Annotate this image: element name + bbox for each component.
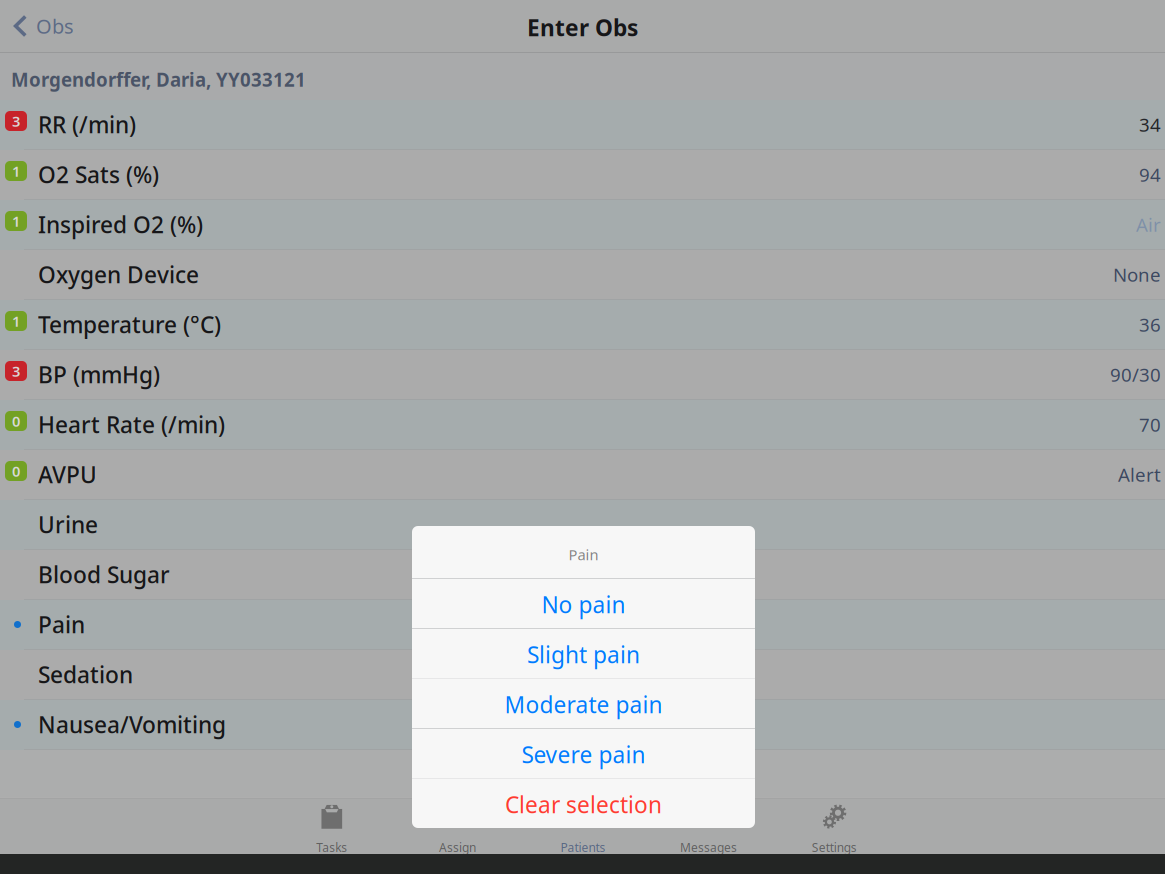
button[interactable]: Severe pain [412, 728, 755, 778]
staticText: Urine [38, 509, 98, 539]
button[interactable]: Urine [0, 500, 1165, 550]
staticText: Alert [1118, 462, 1161, 487]
staticText: 1 [12, 211, 20, 231]
staticText: 0 [12, 411, 20, 431]
button[interactable]: 0 [0, 450, 1165, 500]
staticText: Moderate pain [504, 689, 662, 719]
staticText: Inspired O2 (%) [38, 209, 203, 239]
button[interactable]: Sedation [0, 650, 1165, 700]
button[interactable]: 1 [0, 150, 1165, 200]
staticText: Obs [36, 13, 74, 39]
button[interactable]: 3 [0, 100, 1165, 150]
button[interactable]: Moderate pain [412, 678, 755, 728]
staticText: Clear selection [505, 789, 662, 819]
button[interactable]: Assign [395, 798, 520, 854]
button[interactable]: 1 [0, 300, 1165, 350]
staticText: 1 [12, 161, 20, 181]
button[interactable]: 3 [0, 350, 1165, 400]
staticText: Enter Obs [527, 12, 638, 42]
staticText: Patients [560, 839, 605, 855]
staticText: 0 [12, 461, 20, 481]
button[interactable]: Messages [646, 798, 771, 854]
staticText: Heart Rate (/min) [38, 409, 225, 439]
staticText: Slight pain [527, 639, 640, 669]
staticText: 1 [12, 311, 20, 331]
staticText: BP (mmHg) [38, 359, 160, 389]
staticText: AVPU [38, 459, 97, 489]
button[interactable]: Oxygen Device [0, 250, 1165, 300]
staticText: O2 Sats (%) [38, 159, 159, 189]
staticText: RR (/min) [38, 109, 136, 139]
staticText: 3 [12, 361, 20, 381]
button[interactable]: 0 [0, 400, 1165, 450]
button[interactable]: Patients [520, 798, 646, 854]
staticText: 3 [12, 111, 20, 131]
staticText: Nausea/Vomiting [38, 709, 226, 739]
staticText: Pain [568, 545, 598, 564]
button[interactable]: 1 [0, 200, 1165, 250]
staticText: Pain [38, 609, 85, 639]
button[interactable]: Slight pain [412, 628, 755, 678]
staticText: Messages [680, 839, 737, 855]
staticText: No pain [541, 589, 625, 619]
staticText: Tasks [316, 839, 347, 855]
button[interactable]: Blood Sugar [0, 550, 1165, 600]
button[interactable]: No pain [412, 578, 755, 628]
button[interactable]: Settings [771, 798, 897, 854]
staticText: Oxygen Device [38, 259, 199, 289]
staticText: 34 [1139, 112, 1161, 137]
staticText: 70 [1139, 412, 1161, 437]
staticText: Air [1136, 212, 1161, 237]
button[interactable]: Nausea/Vomiting [0, 700, 1165, 750]
staticText: Severe pain [521, 739, 645, 769]
staticText: Settings [812, 839, 857, 855]
staticText: Sedation [38, 659, 133, 689]
staticText: 94 [1139, 162, 1161, 187]
button[interactable]: Tasks [269, 798, 395, 854]
button[interactable]: Obs [0, 0, 84, 52]
staticText: Temperature (°C) [38, 309, 221, 339]
button[interactable]: Pain [0, 600, 1165, 650]
staticText: 90/30 [1110, 362, 1161, 387]
staticText: Blood Sugar [38, 559, 170, 589]
button[interactable]: Clear selection [412, 778, 755, 828]
staticText: None [1113, 262, 1161, 287]
staticText: 36 [1139, 312, 1161, 337]
staticText: Morgendorffer, Daria, YY033121 [11, 67, 306, 92]
staticText: Assign [439, 839, 476, 855]
